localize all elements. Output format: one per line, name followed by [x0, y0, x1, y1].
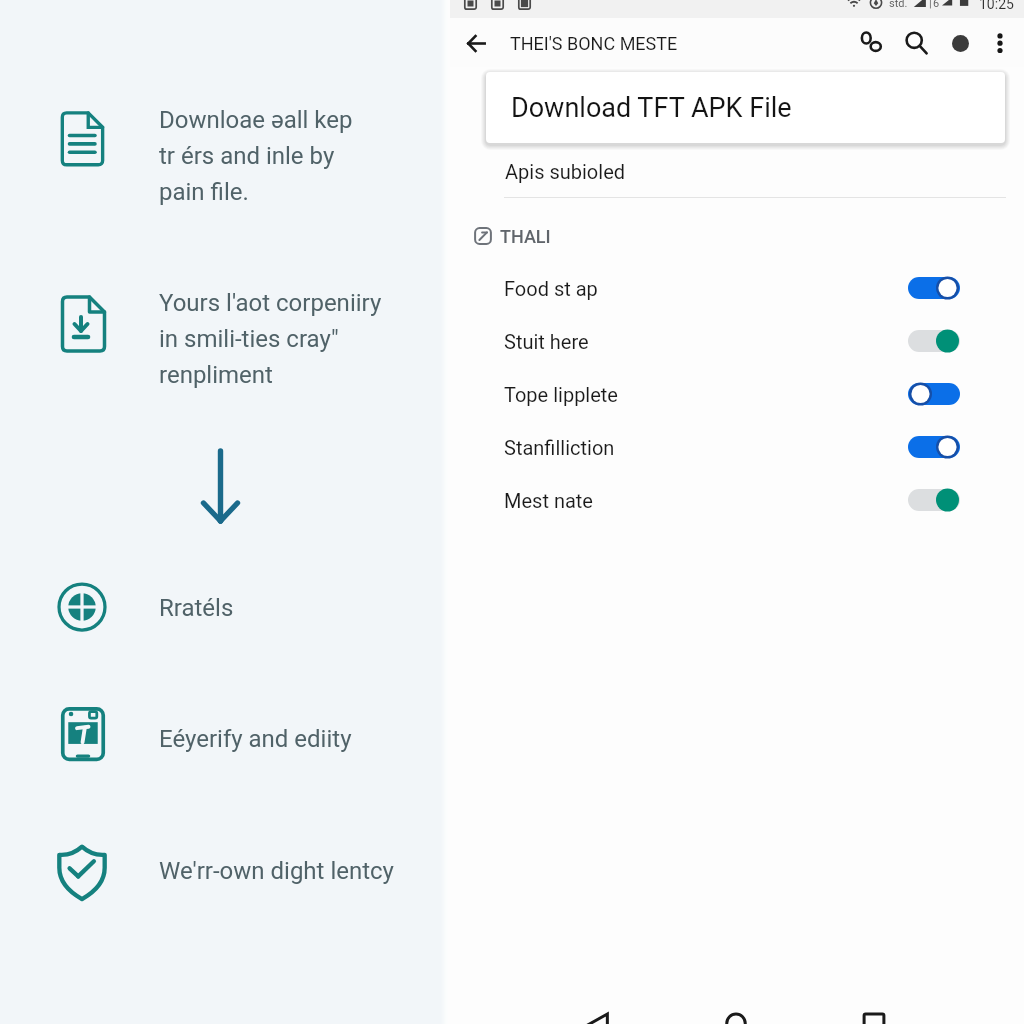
staticText: renpliment [159, 361, 273, 389]
button[interactable]: More options [982, 25, 1018, 61]
button[interactable]: Tope lipplete [445, 368, 1024, 420]
staticText: Stuit here [504, 330, 589, 353]
staticText: Stanfilliction [504, 436, 615, 459]
button[interactable]: Stuit here [445, 315, 1024, 367]
staticText: | [929, 0, 932, 10]
button[interactable]: Back [455, 22, 497, 64]
button[interactable]: Home [712, 999, 760, 1024]
staticText: Food st ap [504, 277, 598, 300]
staticText: Download TFT APK File [511, 92, 792, 124]
staticText: Tope lipplete [504, 383, 618, 406]
staticText: 10:25 [979, 0, 1014, 12]
staticText: Yours l'aot corpeniiry [159, 289, 382, 317]
button[interactable]: Eéyerify and ediity [52, 697, 387, 762]
button[interactable]: Search [894, 21, 938, 65]
staticText: tr érs and inle by [159, 142, 335, 170]
staticText: Eéyerify and ediity [159, 725, 352, 753]
button[interactable]: THALI [474, 223, 551, 249]
staticText: std. [889, 0, 908, 10]
button[interactable]: Yours l'aot corpeniiry [50, 285, 387, 420]
staticText: in smili-ties cray" [159, 325, 339, 353]
button[interactable]: Mest nate [445, 474, 1024, 526]
staticText: 6 [933, 0, 940, 10]
staticText: Downloae əall kep [159, 106, 353, 134]
button[interactable]: Downloae əall kep [50, 101, 387, 236]
staticText: THALI [500, 226, 551, 247]
button[interactable]: We'rr-own dight lentcy [47, 834, 387, 899]
button[interactable]: Stanfilliction [445, 421, 1024, 473]
button[interactable]: Recents [850, 999, 898, 1024]
staticText: Rratéls [159, 594, 234, 622]
button[interactable]: Record [938, 21, 982, 65]
button[interactable]: Download TFT APK File [486, 72, 1005, 143]
staticText: Mest nate [504, 489, 593, 512]
button[interactable]: Back [575, 999, 623, 1024]
button[interactable]: Rratéls [49, 572, 387, 637]
staticText: THEI'S BONC MESTE [510, 33, 678, 54]
button[interactable]: Food st ap [445, 262, 1024, 314]
staticText: Apis subioled [505, 160, 626, 183]
staticText: We'rr-own dight lentcy [159, 857, 394, 885]
staticText: pain file. [159, 178, 249, 206]
button[interactable]: Link [850, 21, 894, 65]
